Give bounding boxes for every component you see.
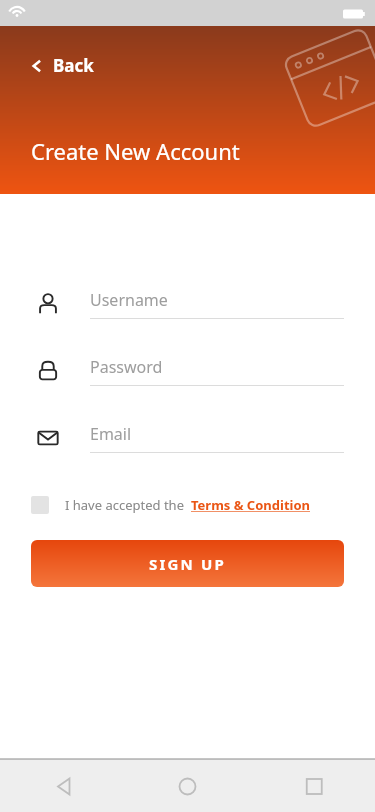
staticText: Email — [90, 423, 132, 445]
staticText: Create New Account — [31, 136, 240, 166]
staticText: I have accepted the — [65, 496, 184, 514]
staticText: Password — [90, 356, 163, 378]
button[interactable]: Terms & Condition — [191, 496, 311, 514]
staticText: Back — [53, 54, 94, 77]
staticText: SIGN UP — [149, 554, 227, 574]
button[interactable]: Email — [31, 418, 344, 458]
staticText: Terms & Condition — [191, 496, 311, 514]
button[interactable]: Username — [31, 284, 344, 324]
button[interactable]: Back — [26, 50, 98, 81]
button[interactable]: SIGN UP — [31, 540, 344, 587]
staticText: Username — [90, 289, 168, 311]
button[interactable]: Password — [31, 351, 344, 391]
